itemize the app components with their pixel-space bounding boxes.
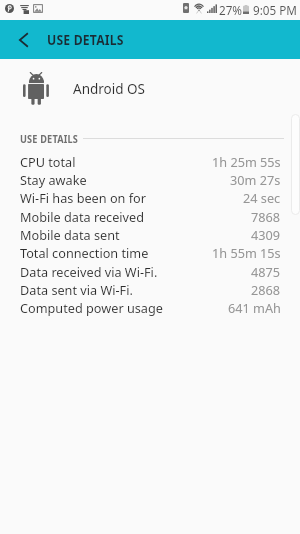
staticText: Mobile data received <box>20 208 144 225</box>
staticText: 27% <box>219 2 243 18</box>
button[interactable]: Total connection time <box>0 243 300 261</box>
staticText: 7868 <box>251 208 281 225</box>
staticText: 2868 <box>251 281 281 298</box>
staticText: Data received via Wi-Fi. <box>20 263 158 280</box>
staticText: 24 sec <box>243 189 281 206</box>
staticText: CPU total <box>20 153 76 170</box>
staticText: Android OS <box>73 80 145 98</box>
staticText: 30m 27s <box>230 171 281 188</box>
staticText: Data sent via Wi-Fi. <box>20 281 133 298</box>
button[interactable]: Mobile data sent <box>0 225 300 243</box>
staticText: 641 mAh <box>228 299 281 316</box>
staticText: 1h 55m 15s <box>212 244 281 261</box>
staticText: Wi-Fi has been on for <box>20 189 146 206</box>
button[interactable]: Data sent via Wi-Fi. <box>0 280 300 298</box>
staticText: Stay awake <box>20 171 87 188</box>
button[interactable]: Wi-Fi has been on for <box>0 188 300 206</box>
button[interactable]: Stay awake <box>0 170 300 188</box>
button[interactable]: Computed power usage <box>0 298 300 316</box>
button[interactable]: Mobile data received <box>0 207 300 225</box>
staticText: 1h 25m 55s <box>212 153 281 170</box>
staticText: USE DETAILS <box>20 132 79 146</box>
button[interactable]: CPU total <box>0 152 300 170</box>
button[interactable]: Back <box>0 20 40 59</box>
staticText: USE DETAILS <box>47 30 124 49</box>
staticText: 4309 <box>251 226 281 243</box>
staticText: Computed power usage <box>20 299 163 316</box>
staticText: Mobile data sent <box>20 226 120 243</box>
staticText: 4875 <box>251 263 281 280</box>
staticText: 9:05 PM <box>253 2 297 18</box>
staticText: Total connection time <box>20 244 149 261</box>
button[interactable]: Data received via Wi-Fi. <box>0 262 300 280</box>
